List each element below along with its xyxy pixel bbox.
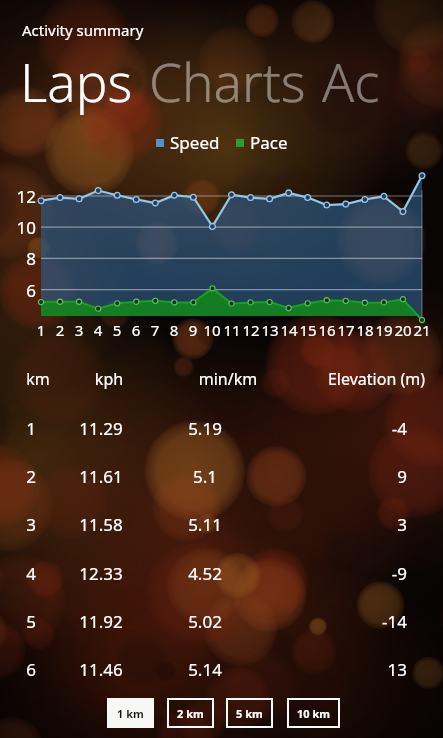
- staticText: 18: [352, 320, 378, 340]
- staticText: 4: [85, 320, 111, 340]
- staticText: 17: [333, 320, 359, 340]
- staticText: 12: [238, 320, 264, 340]
- staticText: Charts: [149, 45, 306, 117]
- staticText: 5.14: [140, 658, 270, 681]
- staticText: 1: [0, 417, 62, 440]
- button[interactable]: 10 km: [287, 698, 340, 728]
- staticText: Activity summary: [22, 20, 144, 40]
- button[interactable]: 5 km: [226, 698, 273, 728]
- button[interactable]: Ac: [322, 45, 380, 117]
- staticText: 1: [28, 320, 54, 340]
- staticText: 19: [371, 320, 397, 340]
- staticText: 12.33: [62, 562, 140, 585]
- button[interactable]: 1: [0, 406, 443, 450]
- button[interactable]: 4: [0, 551, 443, 595]
- staticText: 20: [390, 320, 416, 340]
- staticText: 10 km: [297, 706, 330, 721]
- button[interactable]: 5: [0, 599, 443, 643]
- staticText: 7: [142, 320, 168, 340]
- staticText: 2 km: [177, 706, 204, 721]
- staticText: 16: [314, 320, 340, 340]
- staticText: 4: [0, 562, 62, 585]
- staticText: 13: [270, 658, 407, 681]
- staticText: 10: [2, 216, 36, 239]
- button[interactable]: Charts: [149, 45, 306, 117]
- staticText: Ac: [322, 45, 380, 117]
- button[interactable]: 6: [0, 647, 443, 691]
- staticText: Speed: [170, 131, 220, 154]
- staticText: 1 km: [117, 706, 144, 721]
- staticText: 8: [161, 320, 187, 340]
- staticText: 5.1: [140, 465, 270, 488]
- staticText: 9: [270, 465, 407, 488]
- staticText: Laps: [20, 45, 133, 117]
- staticText: 11.46: [62, 658, 140, 681]
- staticText: 3: [270, 513, 407, 536]
- staticText: 5: [0, 610, 62, 633]
- staticText: 11: [219, 320, 245, 340]
- staticText: 9: [180, 320, 206, 340]
- button[interactable]: Laps: [20, 45, 133, 117]
- staticText: 5.11: [140, 513, 270, 536]
- staticText: -4: [270, 417, 407, 440]
- staticText: 5.02: [140, 610, 270, 633]
- staticText: 15: [295, 320, 321, 340]
- staticText: -14: [270, 610, 407, 633]
- staticText: 6: [123, 320, 149, 340]
- staticText: -9: [270, 562, 407, 585]
- staticText: 8: [2, 247, 36, 270]
- staticText: 21: [409, 320, 435, 340]
- staticText: 12: [2, 185, 36, 208]
- button[interactable]: 2: [0, 454, 443, 498]
- staticText: 11.29: [62, 417, 140, 440]
- staticText: 2: [47, 320, 73, 340]
- staticText: 5: [104, 320, 130, 340]
- button[interactable]: 2 km: [167, 698, 214, 728]
- staticText: 11.92: [62, 610, 140, 633]
- staticText: 10: [199, 320, 225, 340]
- staticText: 3: [0, 513, 62, 536]
- button[interactable]: 1 km: [107, 698, 154, 728]
- staticText: min/km: [178, 368, 278, 390]
- staticText: 4.52: [140, 562, 270, 585]
- staticText: 5 km: [236, 706, 263, 721]
- staticText: 5.19: [140, 417, 270, 440]
- staticText: 14: [276, 320, 302, 340]
- button[interactable]: 3: [0, 502, 443, 546]
- staticText: Elevation (m): [294, 368, 425, 390]
- staticText: 13: [257, 320, 283, 340]
- staticText: kph: [78, 368, 140, 390]
- staticText: 6: [2, 279, 36, 302]
- staticText: Pace: [250, 131, 288, 154]
- staticText: 11.61: [62, 465, 140, 488]
- staticText: 11.58: [62, 513, 140, 536]
- staticText: 2: [0, 465, 62, 488]
- staticText: 6: [0, 658, 62, 681]
- staticText: 3: [66, 320, 92, 340]
- staticText: km: [14, 368, 62, 390]
